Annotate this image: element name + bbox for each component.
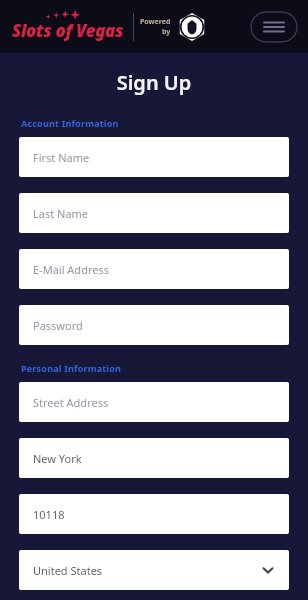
button[interactable]: Menu xyxy=(250,11,298,43)
staticText: First Name xyxy=(33,150,275,165)
button[interactable]: Last Name xyxy=(19,193,289,233)
staticText: Account Information xyxy=(21,117,119,129)
button[interactable]: Password xyxy=(19,305,289,345)
button[interactable]: New York xyxy=(19,438,289,478)
staticText: Personal Information xyxy=(21,362,122,374)
staticText: Powered xyxy=(140,17,171,27)
staticText: United States xyxy=(33,563,261,578)
button[interactable]: United States xyxy=(19,550,289,590)
staticText: Last Name xyxy=(33,206,275,221)
staticText: 10118 xyxy=(33,507,275,522)
staticText: by xyxy=(162,27,171,37)
button[interactable]: Street Address xyxy=(19,382,289,422)
staticText: E-Mail Address xyxy=(33,262,275,277)
staticText: Password xyxy=(33,318,275,333)
button[interactable]: Slots of Vegas home xyxy=(12,12,124,42)
staticText: New York xyxy=(33,451,275,466)
staticText: Sign Up xyxy=(0,69,308,96)
staticText: Slots of Vegas xyxy=(12,19,124,42)
button[interactable]: 10118 xyxy=(19,494,289,534)
staticText: Street Address xyxy=(33,395,275,410)
button[interactable]: E-Mail Address xyxy=(19,249,289,289)
button[interactable]: First Name xyxy=(19,137,289,177)
